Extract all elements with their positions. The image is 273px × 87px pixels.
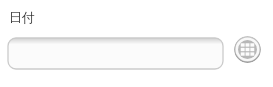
button[interactable]: Open keypad	[234, 36, 261, 63]
button[interactable]	[7, 37, 224, 70]
staticText: 日付	[9, 9, 35, 25]
